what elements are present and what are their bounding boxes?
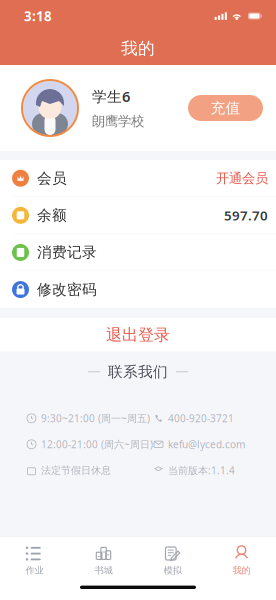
staticText: 9:30~21:00 (周一~周五) <box>41 411 150 425</box>
button[interactable]: 作业 <box>0 537 69 582</box>
button[interactable]: 模拟 <box>138 537 207 582</box>
staticText: 我的 <box>121 38 155 59</box>
button[interactable]: 修改密码 <box>0 271 276 308</box>
staticText: 联系我们 <box>108 363 168 381</box>
button[interactable]: 会员 <box>0 160 276 196</box>
staticText: 当前版本:1.1.4 <box>168 463 235 477</box>
button[interactable]: 我的 <box>207 537 276 582</box>
staticText: 模拟 <box>163 565 181 576</box>
staticText: 开通会员 <box>216 170 268 186</box>
staticText: 余额 <box>37 206 67 224</box>
staticText: 朗鹰学校 <box>92 113 144 129</box>
staticText: 消费记录 <box>37 243 97 261</box>
staticText: 597.70 <box>224 206 268 224</box>
staticText: 书城 <box>94 565 112 576</box>
staticText: 作业 <box>25 565 43 576</box>
staticText: 修改密码 <box>37 280 97 298</box>
staticText: 充值 <box>210 99 240 117</box>
button[interactable]: 退出登录 <box>0 318 276 352</box>
staticText: 会员 <box>37 169 67 187</box>
staticText: kefu@lyced.com <box>168 437 245 451</box>
staticText: 我的 <box>232 565 250 576</box>
staticText: 12:00-21:00 (周六~周日) <box>41 437 153 451</box>
button[interactable]: 消费记录 <box>0 234 276 271</box>
staticText: 退出登录 <box>106 325 170 345</box>
staticText: 学生6 <box>92 87 130 106</box>
staticText: 400-920-3721 <box>168 411 234 425</box>
staticText: 法定节假日休息 <box>41 464 111 477</box>
staticText: 3:18 <box>24 7 52 25</box>
button[interactable]: 书城 <box>69 537 138 582</box>
button[interactable]: 充值 <box>188 95 263 121</box>
button[interactable]: 余额 <box>0 197 276 234</box>
